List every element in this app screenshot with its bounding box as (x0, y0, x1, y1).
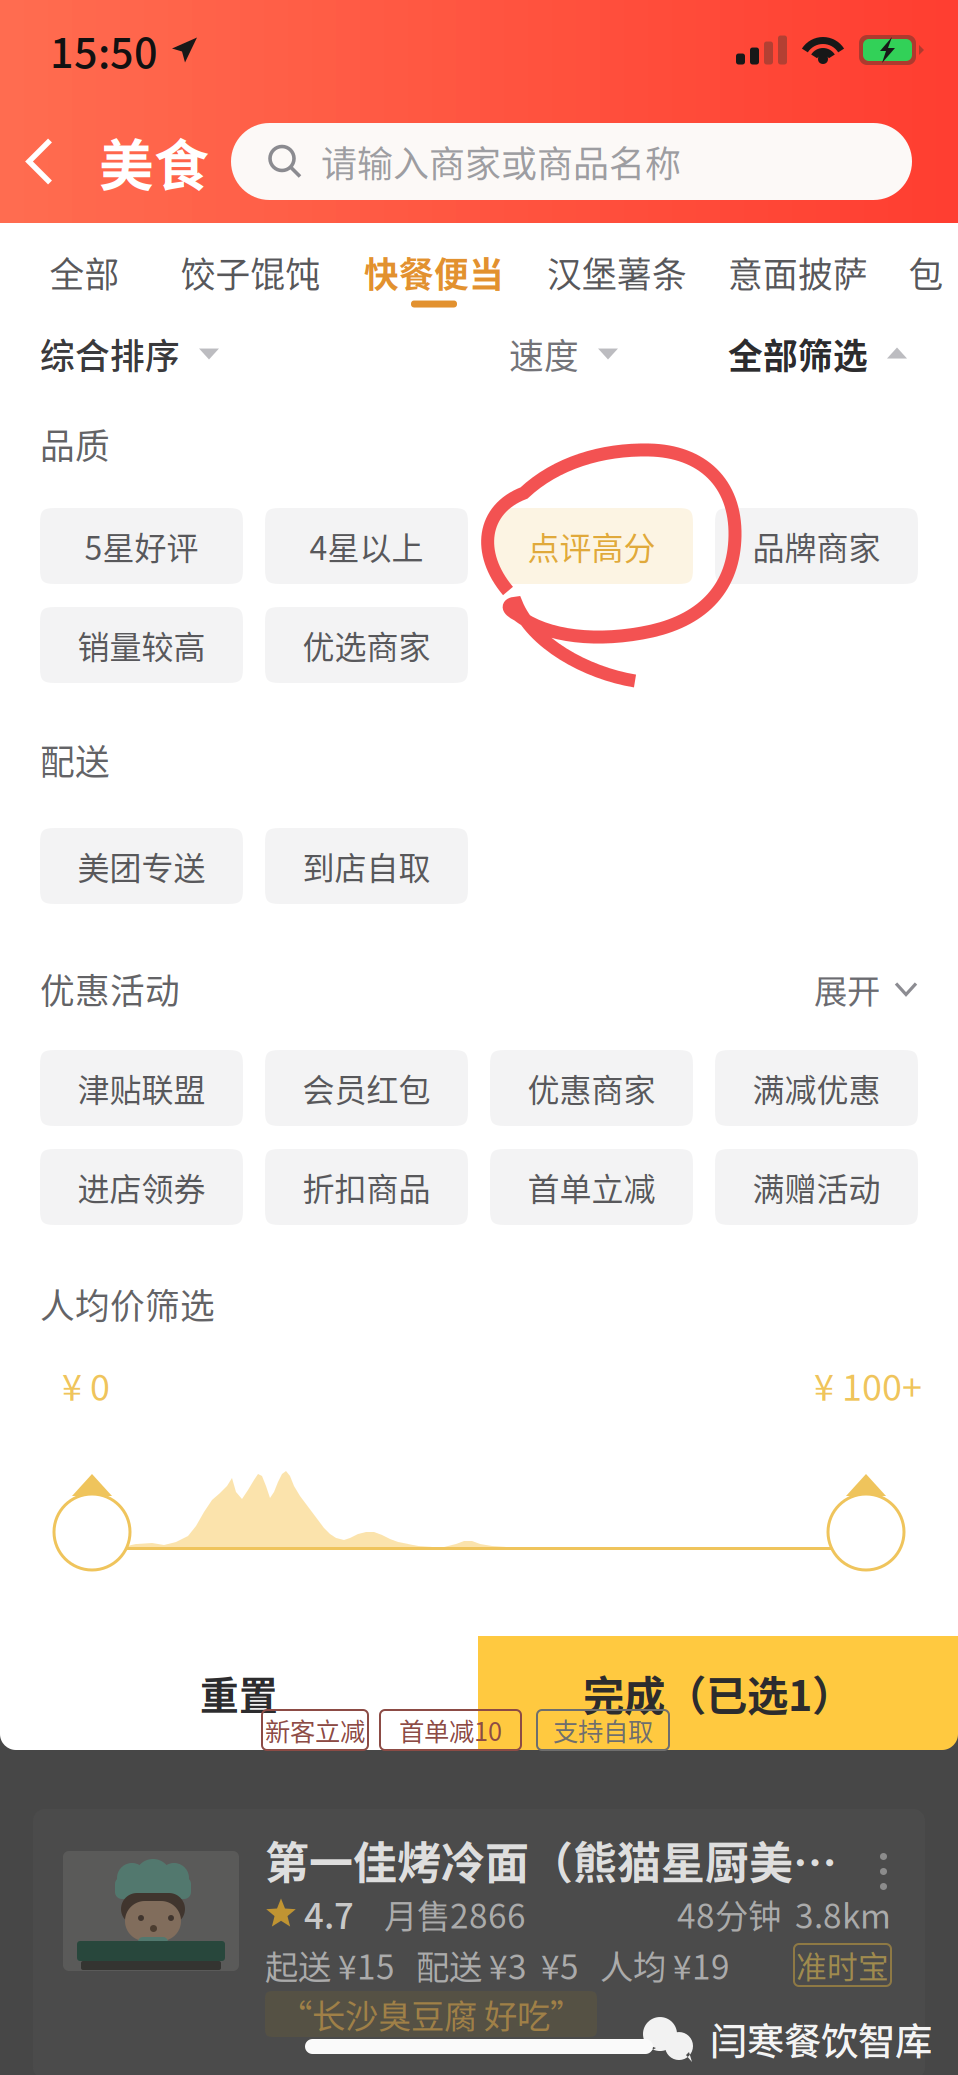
button[interactable]: 首单立减 (490, 1149, 693, 1225)
button[interactable]: 满赠活动 (715, 1149, 918, 1225)
button[interactable]: 进店领券 (40, 1149, 243, 1225)
staticText: 起送 ¥15 配送 ¥3 ¥5 人均 ¥19 (265, 1941, 730, 1989)
staticText: 优选商家 (302, 622, 430, 668)
staticText: 折扣商品 (302, 1164, 430, 1210)
staticText: 准时宝 (796, 1943, 889, 1987)
staticText: 支持自取 (553, 1712, 653, 1748)
button[interactable]: 饺子馄饨 (159, 223, 342, 317)
staticText: 重置 (200, 1665, 278, 1721)
button[interactable]: 完成（已选1） (478, 1636, 958, 1750)
staticText: 到店自取 (302, 843, 430, 889)
staticText: 意面披萨 (728, 247, 868, 298)
staticText: 新客立减 (265, 1712, 365, 1748)
staticText: 闫寒餐饮智库 (710, 2012, 932, 2066)
staticText: 5星好评 (84, 523, 198, 569)
staticText: 品质 (40, 419, 110, 469)
staticText: 优惠活动 (40, 964, 180, 1014)
staticText: 综合排序 (40, 329, 180, 379)
staticText: 完成（已选1） (583, 1663, 853, 1723)
staticText: 津贴联盟 (77, 1065, 205, 1111)
button[interactable]: 速度 (305, 317, 643, 391)
button[interactable]: 到店自取 (265, 828, 468, 904)
button[interactable]: 点评高分 (490, 508, 693, 584)
staticText: 快餐便当 (364, 247, 504, 298)
button[interactable]: 会员红包 (265, 1050, 468, 1126)
staticText: 4.7 (304, 1889, 354, 1939)
button[interactable]: 全部筛选 (704, 317, 958, 391)
button[interactable]: 优选商家 (265, 607, 468, 683)
button[interactable]: 4星以上 (265, 508, 468, 584)
staticText: 品牌商家 (752, 523, 880, 569)
staticText: 全部 (49, 247, 119, 298)
staticText: 会员红包 (302, 1065, 430, 1111)
button[interactable]: 5星好评 (40, 508, 243, 584)
staticText: 第一佳烤冷面（熊猫星厨美… (265, 1828, 837, 1892)
staticText: 展开 (814, 965, 880, 1013)
staticText: 美团专送 (77, 843, 205, 889)
button[interactable]: 销量较高 (40, 607, 243, 683)
staticText: 配送 (40, 735, 110, 785)
staticText: 饺子馄饨 (180, 247, 320, 298)
staticText: ¥ 0 (62, 1359, 110, 1411)
button[interactable]: 返回 美食 (0, 112, 231, 210)
button[interactable]: 请输入商家或商品名称 (231, 123, 912, 200)
button[interactable]: 快餐便当 (342, 223, 526, 317)
button[interactable]: 汉堡薯条 (526, 223, 708, 317)
button[interactable]: 重置 (0, 1636, 478, 1750)
staticText: 月售2866 (384, 1890, 526, 1938)
button[interactable]: 全部 (10, 223, 159, 317)
staticText: 人均价筛选 (40, 1279, 215, 1329)
staticText: 销量较高 (77, 622, 205, 668)
staticText: 速度 (509, 329, 579, 379)
staticText: 全部筛选 (728, 329, 868, 379)
staticText: 美食 (99, 122, 209, 201)
button[interactable]: 展开 (814, 964, 958, 1014)
button[interactable]: 津贴联盟 (40, 1050, 243, 1126)
staticText: 点评高分 (527, 523, 655, 569)
button[interactable]: 综合排序 (0, 317, 244, 391)
button[interactable]: 优惠商家 (490, 1050, 693, 1126)
staticText: 4星以上 (309, 523, 423, 569)
staticText: 满减优惠 (752, 1065, 880, 1111)
button[interactable]: 满减优惠 (715, 1050, 918, 1126)
staticText: 包 (908, 247, 943, 298)
staticText: 优惠商家 (527, 1065, 655, 1111)
button[interactable]: 品牌商家 (715, 508, 918, 584)
button[interactable]: 折扣商品 (265, 1149, 468, 1225)
button[interactable]: 意面披萨 (708, 223, 888, 317)
staticText: 首单立减 (527, 1164, 655, 1210)
staticText: ¥ 100+ (814, 1359, 922, 1411)
staticText: 15:50 (50, 20, 158, 80)
staticText: 请输入商家或商品名称 (321, 135, 681, 187)
button[interactable]: 包 (888, 223, 958, 317)
staticText: 满赠活动 (752, 1164, 880, 1210)
staticText: 汉堡薯条 (547, 247, 687, 298)
button[interactable]: 美团专送 (40, 828, 243, 904)
staticText: 进店领券 (77, 1164, 205, 1210)
staticText: 首单减10 (399, 1712, 502, 1748)
staticText: “长沙臭豆腐 好吃” (279, 1990, 583, 2038)
staticText: 48分钟 3.8km (677, 1890, 891, 1938)
